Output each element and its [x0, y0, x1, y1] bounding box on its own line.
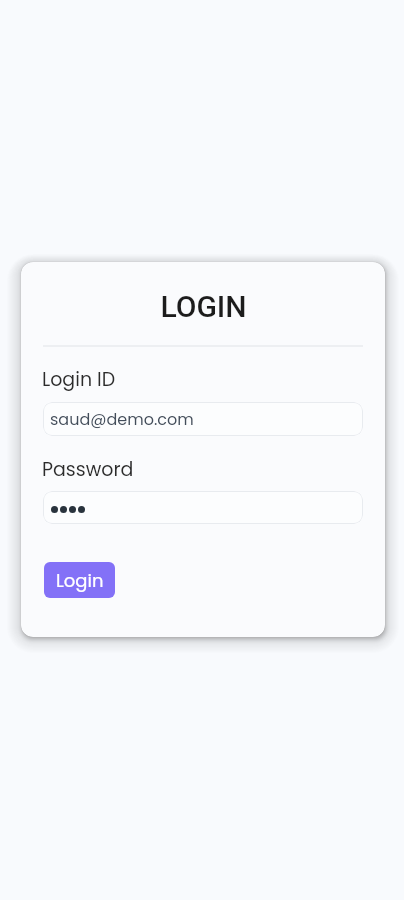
staticText: Password [42, 456, 134, 483]
button[interactable]: saud@demo.com [43, 402, 363, 436]
staticText: LOGIN [160, 289, 247, 324]
button[interactable]: Login [44, 562, 115, 598]
staticText: Login [56, 568, 104, 593]
staticText: saud@demo.com [50, 408, 194, 430]
button[interactable]: Password field [43, 491, 363, 524]
staticText: Login ID [42, 366, 116, 393]
